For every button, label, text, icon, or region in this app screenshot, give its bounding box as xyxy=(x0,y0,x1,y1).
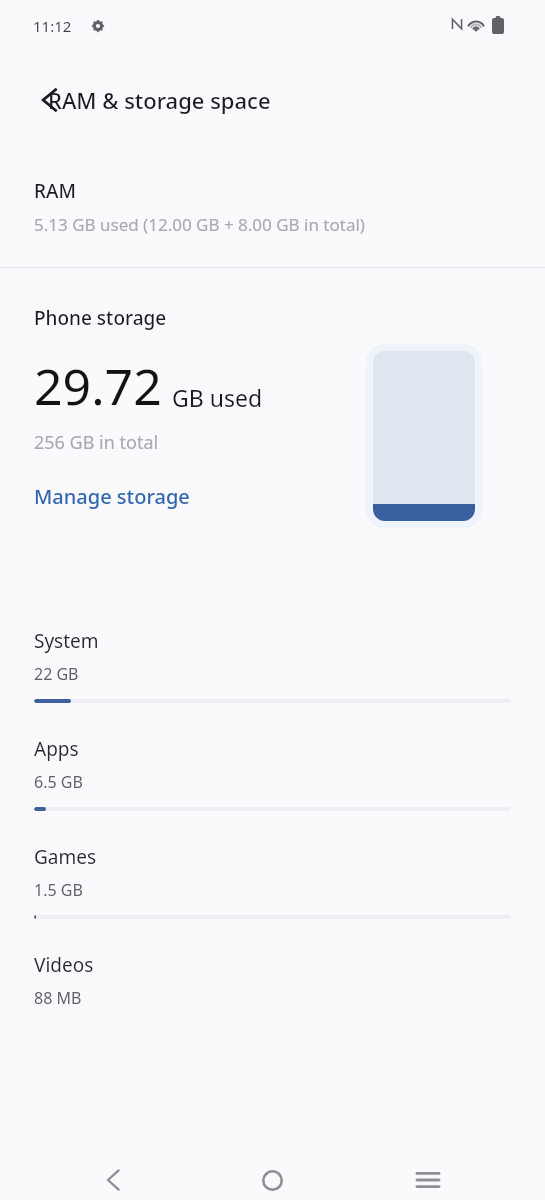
staticText: Phone storage xyxy=(34,305,167,331)
button[interactable]: Apps xyxy=(0,736,545,811)
staticText: GB used xyxy=(172,382,263,413)
staticText: Games xyxy=(34,844,97,870)
staticText: 29.72 xyxy=(34,352,162,420)
staticText: Apps xyxy=(34,736,79,762)
button[interactable]: Back xyxy=(85,1152,141,1200)
staticText: 1.5 GB xyxy=(34,879,83,901)
staticText: Videos xyxy=(34,952,94,978)
staticText: Manage storage xyxy=(34,483,190,510)
staticText: 5.13 GB used (12.00 GB + 8.00 GB in tota… xyxy=(34,213,365,236)
button[interactable]: Videos xyxy=(0,952,545,1009)
staticText: RAM xyxy=(34,178,76,204)
staticText: RAM & storage space xyxy=(48,85,271,115)
button[interactable]: RAM xyxy=(0,178,545,236)
staticText: System xyxy=(34,628,99,654)
button[interactable]: Home xyxy=(244,1152,300,1200)
staticText: 11:12 xyxy=(33,16,72,36)
button[interactable]: Manage storage xyxy=(34,483,190,510)
button[interactable]: Games xyxy=(0,844,545,919)
staticText: 6.5 GB xyxy=(34,771,83,793)
staticText: 88 MB xyxy=(34,987,82,1009)
button[interactable]: System xyxy=(0,628,545,703)
button[interactable]: Back xyxy=(28,78,72,122)
staticText: 22 GB xyxy=(34,663,79,685)
staticText: 256 GB in total xyxy=(34,430,159,455)
button[interactable]: Recent apps xyxy=(400,1152,456,1200)
